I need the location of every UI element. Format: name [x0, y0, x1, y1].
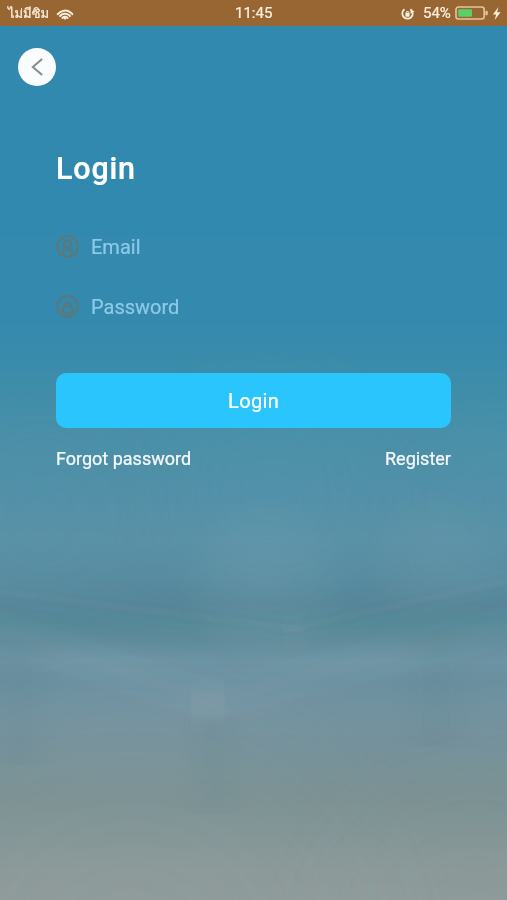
button[interactable]: Password	[56, 295, 451, 318]
staticText: Login	[228, 389, 280, 412]
staticText: Email	[91, 235, 141, 258]
staticText: ไม่มีซิม	[8, 3, 50, 24]
staticText: 11:45	[235, 4, 273, 22]
staticText: Login	[56, 151, 136, 187]
staticText: Password	[91, 295, 180, 318]
button[interactable]: Back	[18, 48, 56, 86]
button[interactable]: Login	[56, 373, 451, 428]
button[interactable]: Email	[56, 235, 451, 258]
button[interactable]: Register	[385, 448, 451, 469]
button[interactable]: Forgot password	[56, 448, 192, 469]
staticText: 54%	[423, 4, 451, 22]
